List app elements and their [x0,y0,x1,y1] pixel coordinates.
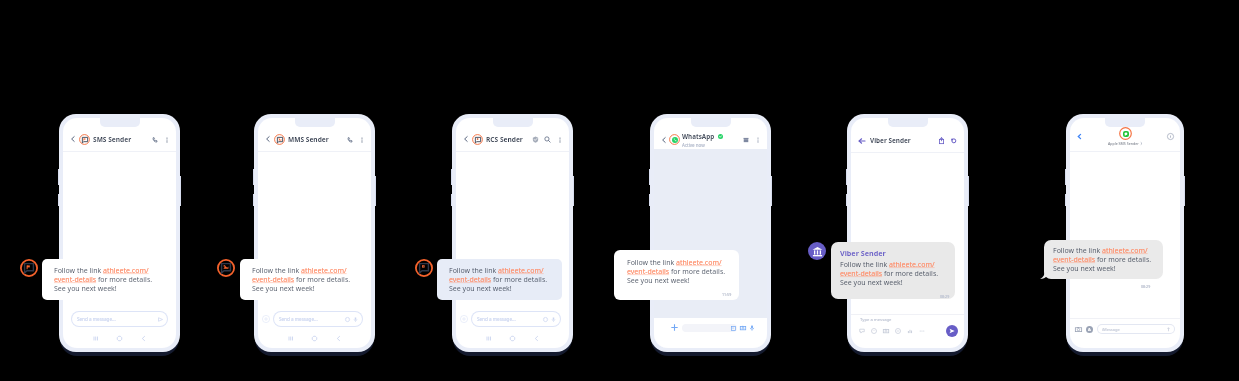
staticText: Follow the link athleete.com/ event-deta… [252,266,351,293]
staticText: Send a message... [279,316,318,322]
button[interactable]: Attach [670,323,679,332]
staticText: Follow the link athleete.com/ event-deta… [1053,246,1152,273]
button[interactable]: Back [461,134,471,144]
button[interactable]: Follow the link athleete.com/ event-deta… [614,250,739,300]
staticText: SMS Sender [93,135,132,144]
button[interactable]: More options [162,135,171,144]
staticText: Type a message [860,317,892,323]
staticText: MMS Sender [288,135,329,144]
button[interactable]: Business [741,135,750,144]
staticText: Apple SMS Sender [1108,141,1139,146]
button[interactable]: Follow the link athleete.com/ event-deta… [1044,240,1163,279]
button[interactable]: iMessage [1098,325,1174,333]
button[interactable]: Viber Sender [831,242,955,299]
button[interactable]: Call [150,135,159,144]
staticText: Follow the link athleete.com/ event-deta… [627,258,726,285]
staticText: Send a message... [477,316,516,322]
staticText: Follow the link athleete.com/ event-deta… [840,260,939,287]
staticText: RCS Sender [486,135,523,144]
button[interactable]: Follow the link athleete.com/ event-deta… [42,259,167,300]
button[interactable]: Info [1166,132,1175,141]
button[interactable]: Search [543,135,552,144]
button[interactable] [682,324,737,332]
staticText: A [1088,327,1091,332]
staticText: Send a message... [77,316,116,322]
staticText: 08:29 [940,294,950,299]
button[interactable]: Back [857,136,867,146]
button[interactable]: Follow the link athleete.com/ event-deta… [240,259,365,300]
button[interactable]: Add [459,314,469,324]
staticText: Viber Sender [840,248,886,258]
button[interactable]: Call [345,135,354,144]
button[interactable]: Send a message... [274,312,362,326]
staticText: 08:29 [1141,284,1151,289]
button[interactable]: Back [1075,132,1084,141]
staticText: Follow the link athleete.com/ event-deta… [54,266,153,293]
button[interactable]: Send [946,325,958,337]
button[interactable]: Call [949,136,958,145]
button[interactable]: Back [68,134,78,144]
staticText: Active now [682,142,705,148]
button[interactable]: Back [263,134,273,144]
button[interactable]: Send a message... [472,312,560,326]
staticText: WhatsApp [682,132,715,141]
button[interactable]: Add [261,314,271,324]
staticText: Follow the link athleete.com/ event-deta… [449,266,548,293]
button[interactable]: Verified [531,135,540,144]
button[interactable]: Send a message... [72,312,167,326]
staticText: iMessage [1102,327,1120,332]
button[interactable]: Follow the link athleete.com/ event-deta… [437,259,562,300]
button[interactable]: More options [753,135,762,144]
button[interactable]: More options [357,135,366,144]
staticText: 11:59 [722,292,732,297]
button[interactable]: Back [659,135,669,145]
button[interactable]: Share [937,136,946,145]
staticText: Viber Sender [870,136,911,145]
button[interactable]: More options [555,135,564,144]
